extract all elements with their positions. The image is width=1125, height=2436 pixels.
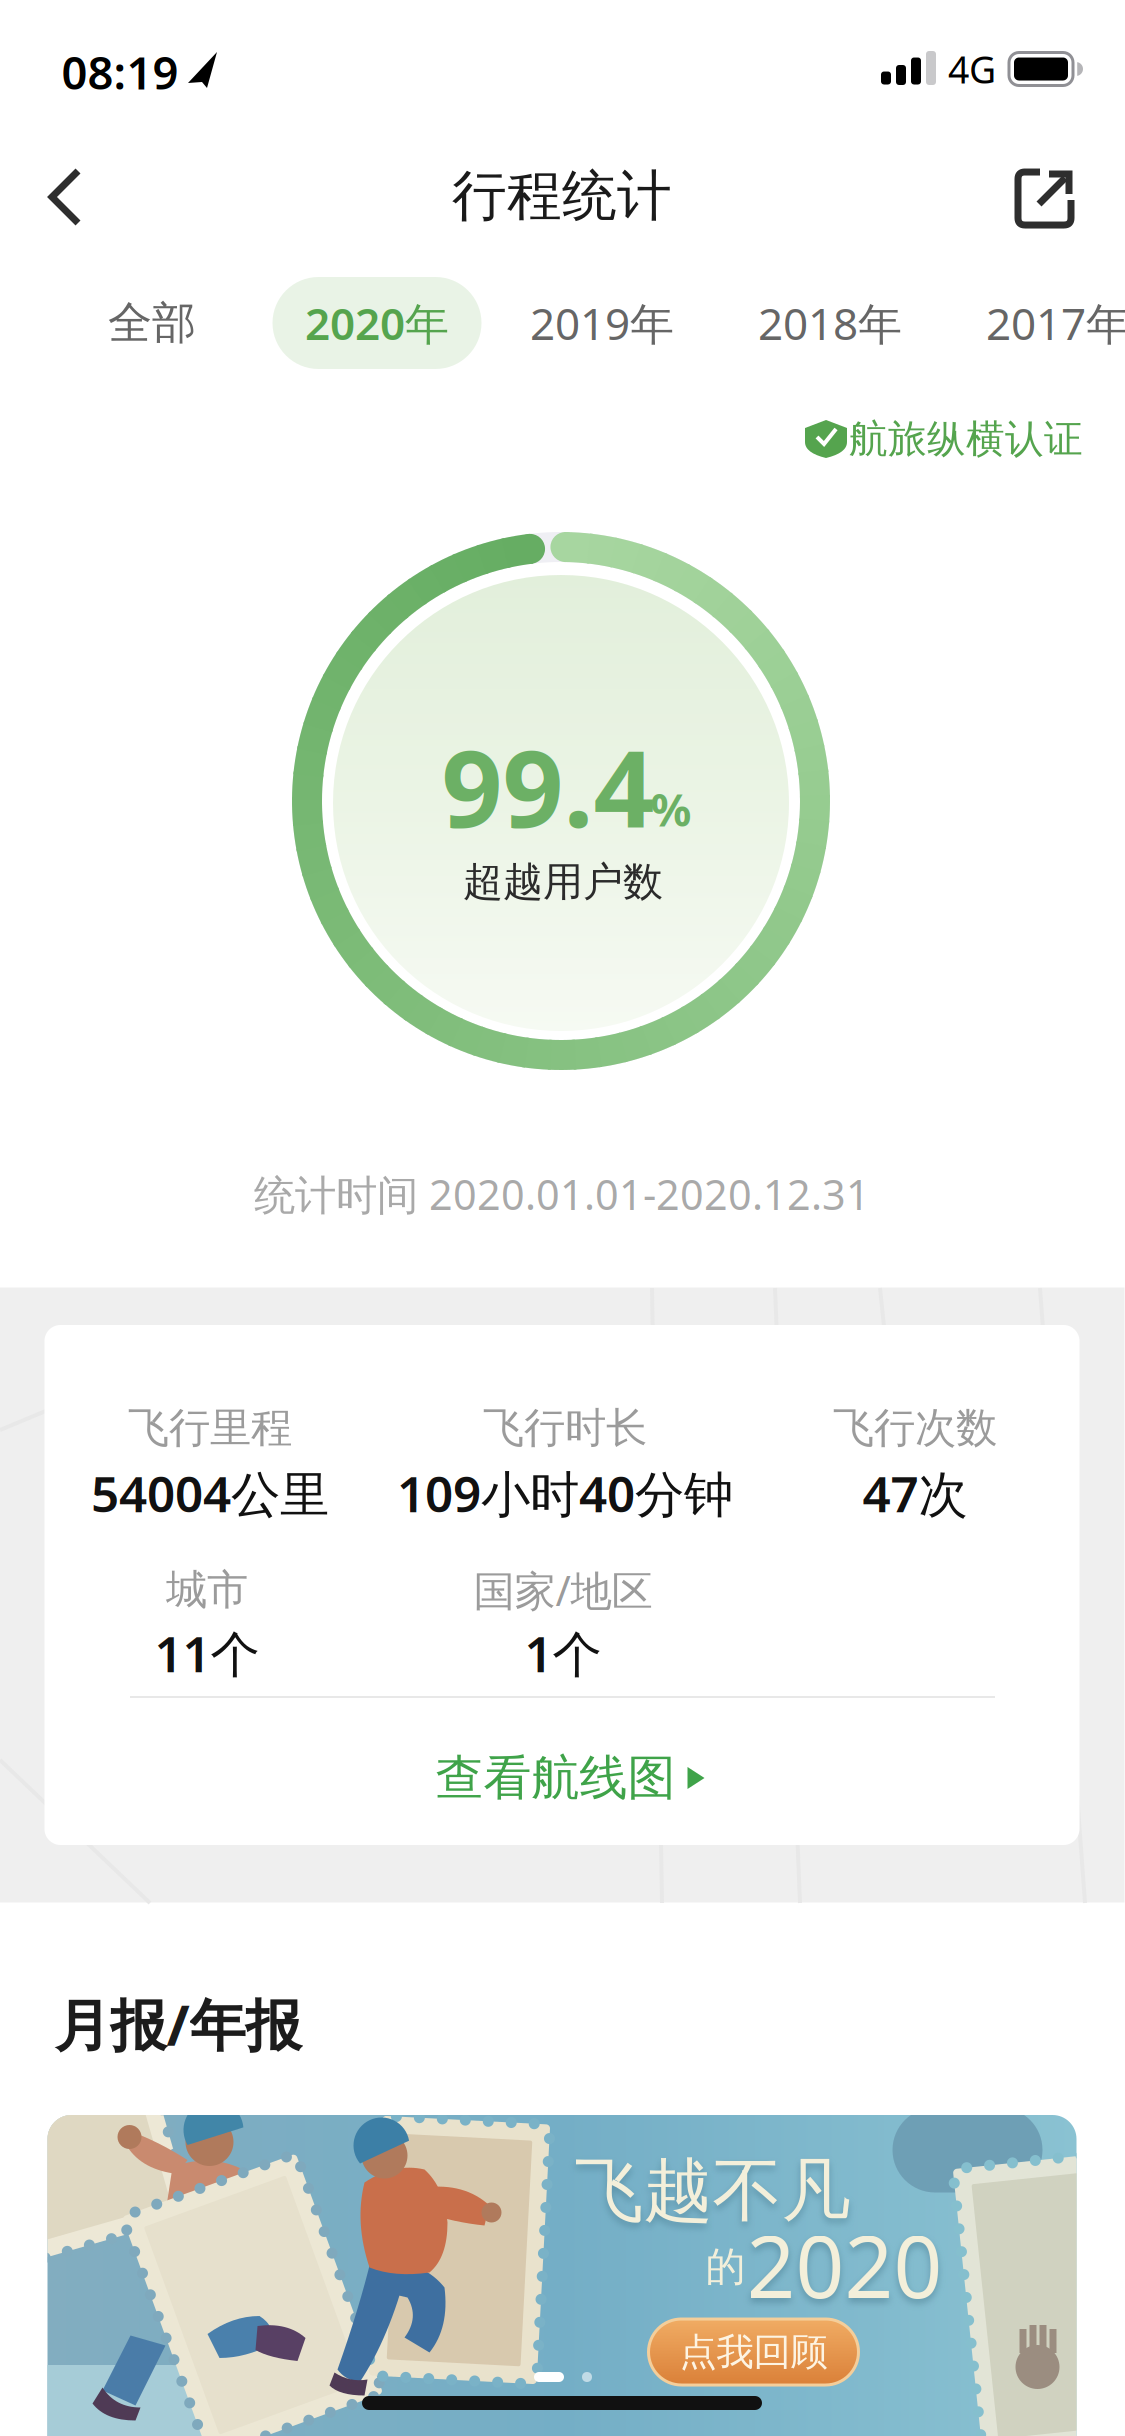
staticText: 飞行时长 bbox=[483, 1403, 647, 1453]
staticText: 点我回顾 bbox=[679, 2329, 827, 2375]
staticText: 航旅纵横认证 bbox=[849, 415, 1083, 463]
staticText: 4G bbox=[948, 44, 996, 94]
staticText: 109小时40分钟 bbox=[397, 1460, 733, 1526]
staticText: 2018年 bbox=[758, 294, 902, 352]
staticText: 08:19 bbox=[61, 42, 178, 102]
button[interactable]: Share bbox=[994, 148, 1094, 248]
staticText: 超越用户数 bbox=[463, 857, 663, 906]
button[interactable]: 2017年 bbox=[968, 277, 1125, 369]
staticText: 47次 bbox=[862, 1460, 967, 1526]
staticText: 99.4 bbox=[441, 715, 654, 857]
button[interactable]: 飞越不凡 bbox=[47, 2115, 1076, 2436]
staticText: 飞行里程 bbox=[128, 1403, 292, 1453]
staticText: 月报/年报 bbox=[54, 1987, 301, 2061]
staticText: 2019年 bbox=[530, 294, 674, 352]
staticText: 查看航线图 bbox=[435, 1748, 675, 1807]
staticText: 行程统计 bbox=[452, 162, 672, 229]
button[interactable]: Back bbox=[13, 159, 133, 235]
staticText: 的 bbox=[705, 2242, 745, 2291]
staticText: % bbox=[650, 779, 691, 839]
staticText: 54004公里 bbox=[91, 1460, 329, 1526]
staticText: 全部 bbox=[108, 296, 196, 350]
staticText: 2020年 bbox=[305, 294, 449, 352]
button[interactable]: 2019年 bbox=[512, 277, 692, 369]
button[interactable]: 全部 bbox=[82, 277, 222, 369]
staticText: 11个 bbox=[154, 1620, 259, 1686]
staticText: 国家/地区 bbox=[473, 1563, 652, 1617]
staticText: 1个 bbox=[524, 1620, 601, 1686]
staticText: 2020 bbox=[746, 2208, 942, 2322]
staticText: 城市 bbox=[166, 1565, 248, 1615]
button[interactable]: 2018年 bbox=[740, 277, 920, 369]
button[interactable]: 查看航线图 bbox=[360, 1730, 780, 1825]
button[interactable]: 2020年 bbox=[272, 277, 481, 369]
staticText: 2017年 bbox=[986, 294, 1125, 352]
staticText: 飞行次数 bbox=[833, 1403, 997, 1453]
staticText: 飞越不凡 bbox=[574, 2148, 850, 2234]
staticText: 统计时间 2020.01.01-2020.12.31 bbox=[254, 1167, 870, 1221]
